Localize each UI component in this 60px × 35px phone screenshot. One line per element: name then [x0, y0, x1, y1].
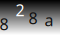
staticText: a [44, 9, 53, 31]
staticText: 2 [15, 0, 24, 21]
staticText: 8 [28, 7, 37, 29]
staticText: 8 [0, 13, 8, 35]
